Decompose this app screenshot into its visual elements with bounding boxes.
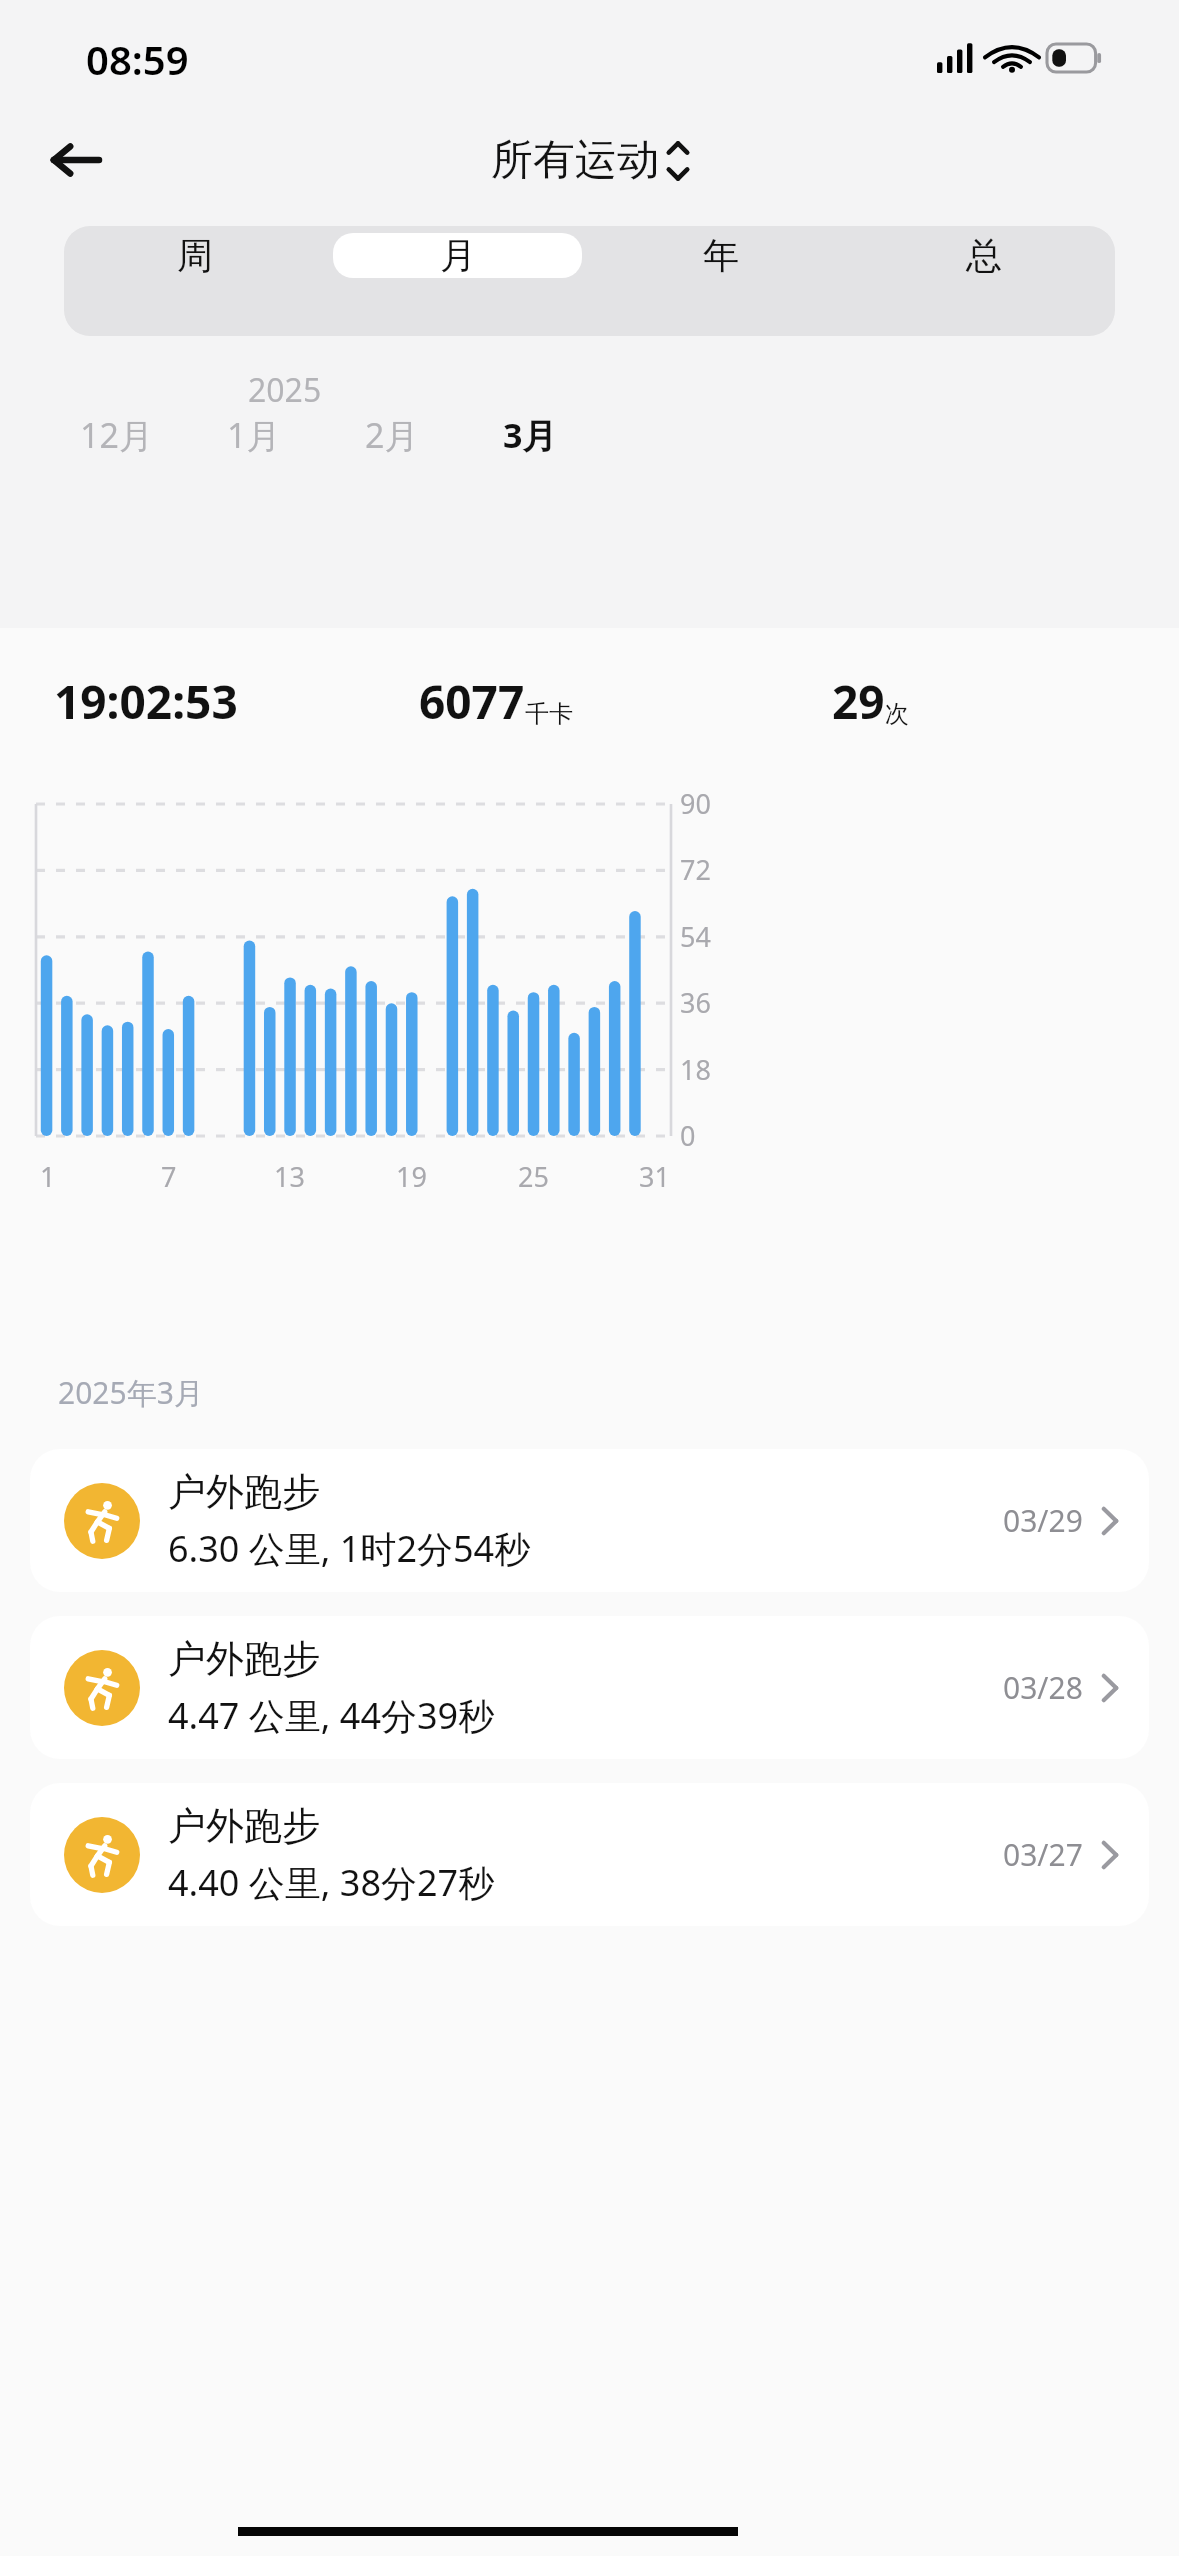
staticText: 19:02:53	[54, 670, 238, 733]
staticText: 6077	[419, 670, 525, 733]
staticText: 03/27	[1003, 1834, 1083, 1875]
staticText: 户外跑步	[168, 1635, 320, 1683]
staticText: 13	[274, 1158, 305, 1195]
staticText: 08:59	[86, 32, 189, 86]
button[interactable]: 户外跑步	[30, 1616, 1149, 1759]
button[interactable]: 2月	[332, 412, 452, 458]
staticText: 6.30 公里, 1时2分54秒	[168, 1524, 531, 1573]
staticText: 1	[40, 1158, 56, 1195]
staticText: 0	[680, 1117, 696, 1154]
staticText: 年	[703, 233, 739, 278]
staticText: 3月	[503, 412, 557, 458]
button[interactable]: 总	[859, 233, 1108, 278]
staticText: 户外跑步	[168, 1802, 320, 1850]
staticText: 54	[680, 918, 711, 955]
staticText: 18	[680, 1051, 711, 1088]
staticText: 03/28	[1003, 1667, 1083, 1708]
staticText: 31	[639, 1158, 670, 1195]
staticText: 72	[680, 851, 711, 888]
button[interactable]: 年	[596, 233, 845, 278]
button[interactable]: 所有运动	[483, 130, 697, 191]
staticText: 2025	[248, 368, 322, 412]
staticText: 90	[680, 785, 711, 822]
button[interactable]: 月	[333, 233, 582, 278]
staticText: 12月	[80, 412, 153, 458]
staticText: 所有运动	[491, 134, 659, 187]
staticText: 次	[885, 699, 909, 729]
staticText: 2月	[365, 412, 419, 458]
staticText: 29	[832, 670, 885, 733]
staticText: 4.47 公里, 44分39秒	[168, 1691, 495, 1740]
staticText: 7	[161, 1158, 177, 1195]
staticText: 1月	[227, 412, 281, 458]
staticText: 月	[440, 233, 476, 278]
button[interactable]: 1月	[194, 412, 314, 458]
staticText: 千卡	[525, 699, 573, 729]
staticText: 4.40 公里, 38分27秒	[168, 1858, 495, 1907]
button[interactable]: 周	[71, 233, 319, 278]
button[interactable]: 户外跑步	[30, 1783, 1149, 1926]
staticText: 总	[966, 233, 1002, 278]
staticText: 周	[177, 233, 213, 278]
staticText: 户外跑步	[168, 1468, 320, 1516]
staticText: 2025年3月	[58, 1372, 204, 1413]
button[interactable]: 3月	[470, 412, 590, 458]
staticText: 19	[396, 1158, 427, 1195]
staticText: 36	[680, 984, 711, 1021]
button[interactable]: Back	[36, 121, 114, 199]
staticText: 25	[518, 1158, 549, 1195]
button[interactable]: 12月	[48, 412, 184, 458]
button[interactable]: 户外跑步	[30, 1449, 1149, 1592]
staticText: 03/29	[1003, 1500, 1083, 1541]
